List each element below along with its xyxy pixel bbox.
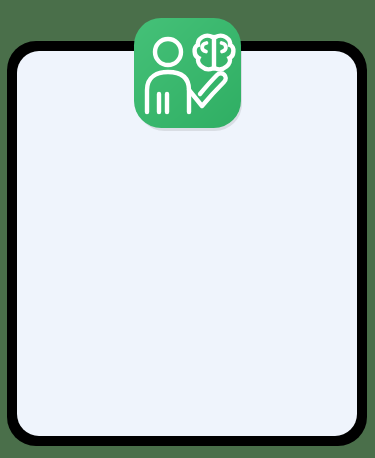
button[interactable]: App icon <box>134 18 241 128</box>
